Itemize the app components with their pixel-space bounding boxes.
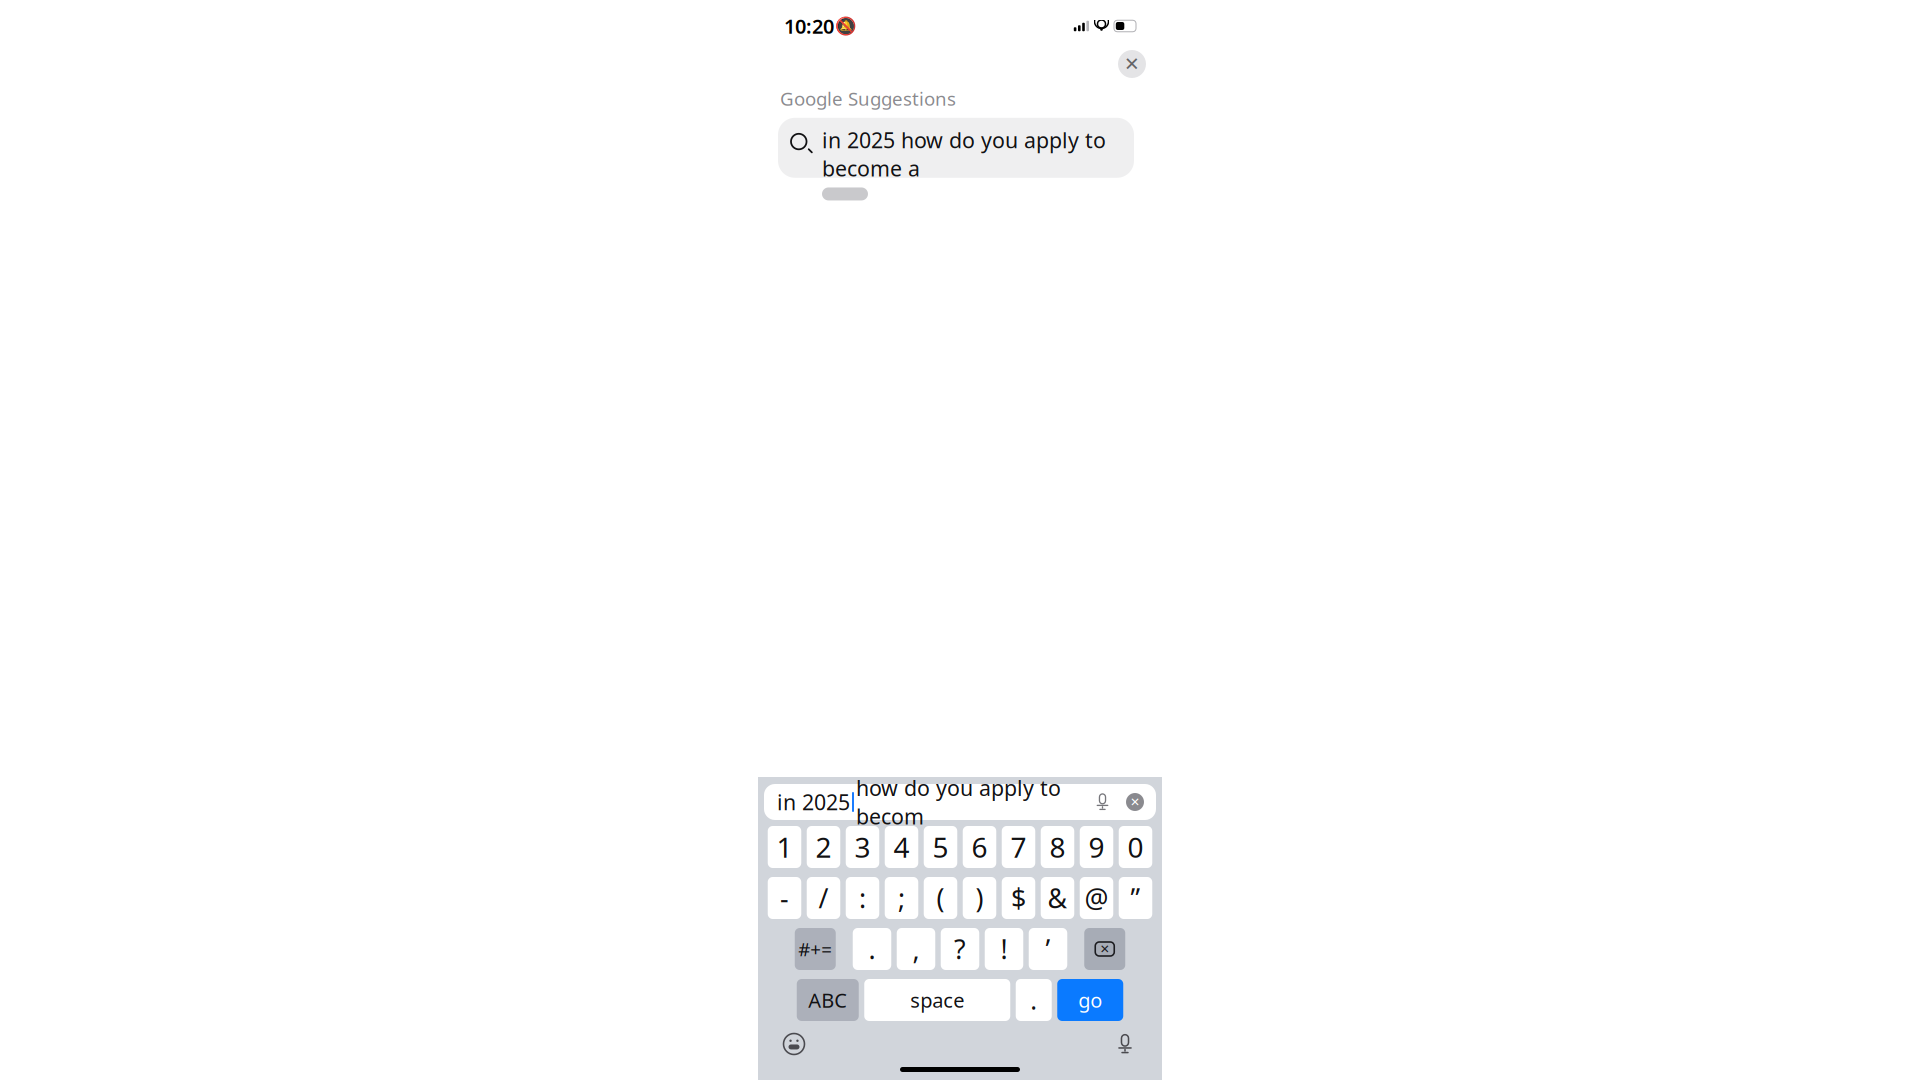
staticText: . [868, 931, 875, 967]
staticText: how do you apply to becom [856, 774, 1061, 830]
button[interactable]: 7 [1002, 826, 1035, 868]
staticText: 2 [815, 828, 831, 866]
button[interactable]: 2 [807, 826, 840, 868]
staticText: ; [898, 880, 905, 916]
button[interactable]: 1 [768, 826, 801, 868]
staticText: 9 [1088, 828, 1104, 866]
button[interactable]: . [853, 928, 891, 970]
staticText: 4 [893, 828, 909, 866]
staticText: in 2025 how do you apply to become a [822, 126, 1106, 182]
button[interactable]: - [768, 877, 801, 919]
button[interactable]: 6 [963, 826, 996, 868]
staticText: , [912, 931, 919, 967]
staticText: in 2025 [777, 788, 850, 816]
button[interactable]: Clear text [1126, 793, 1144, 811]
staticText: . [1030, 983, 1037, 1017]
staticText: 6 [971, 828, 987, 866]
staticText: / [818, 880, 828, 916]
staticText: & [1047, 880, 1067, 916]
button[interactable]: : [846, 877, 879, 919]
button[interactable]: space [864, 979, 1010, 1021]
staticText: #+= [798, 937, 832, 961]
staticText: 3 [854, 828, 870, 866]
staticText: ? [954, 931, 966, 967]
button[interactable]: ” [1119, 877, 1152, 919]
button[interactable]: & [1041, 877, 1074, 919]
staticText: ” [1130, 880, 1140, 916]
staticText: 1 [776, 828, 792, 866]
button[interactable]: 8 [1041, 826, 1074, 868]
staticText: ’ [1045, 931, 1050, 967]
staticText: 8 [1049, 828, 1065, 866]
button[interactable]: 9 [1080, 826, 1113, 868]
staticText: ) [975, 880, 983, 916]
button[interactable]: ; [885, 877, 918, 919]
button[interactable]: @ [1080, 877, 1113, 919]
staticText: ✕ [1100, 942, 1110, 956]
staticText: 5 [932, 828, 948, 866]
button[interactable]: 0 [1119, 826, 1152, 868]
button[interactable]: 3 [846, 826, 879, 868]
button[interactable]: . [1016, 979, 1052, 1021]
button[interactable]: in 2025 how do you apply to become a [778, 118, 1134, 178]
staticText: ABC [808, 987, 847, 1013]
button[interactable]: ? [941, 928, 979, 970]
staticText: Google Suggestions [780, 86, 956, 111]
button[interactable]: Delete [1084, 928, 1125, 970]
button[interactable]: ABC [797, 979, 859, 1021]
staticText: go [1078, 987, 1102, 1013]
staticText: ! [1000, 931, 1007, 967]
button[interactable]: 5 [924, 826, 957, 868]
button[interactable]: / [807, 877, 840, 919]
button[interactable]: 4 [885, 826, 918, 868]
button[interactable]: ( [924, 877, 957, 919]
staticText: 10:20 [784, 13, 834, 39]
staticText: 🔕 [834, 16, 856, 36]
staticText: space [910, 987, 964, 1013]
button[interactable]: ’ [1029, 928, 1067, 970]
staticText: 7 [1010, 828, 1026, 866]
button[interactable]: Emoji [782, 1032, 806, 1056]
staticText: : [859, 880, 866, 916]
button[interactable]: , [897, 928, 935, 970]
staticText: @ [1084, 880, 1108, 916]
staticText: 0 [1127, 828, 1143, 866]
button[interactable]: $ [1002, 877, 1035, 919]
staticText: $ [1011, 880, 1026, 916]
button[interactable]: Dictate [1093, 792, 1112, 811]
staticText: ✕ [1124, 53, 1140, 75]
button[interactable]: ) [963, 877, 996, 919]
button[interactable]: Close [1118, 50, 1146, 78]
button[interactable]: #+= [795, 928, 836, 970]
staticText: ✕ [1130, 795, 1140, 809]
staticText: - [780, 880, 789, 916]
button[interactable]: Dictation [1114, 1033, 1136, 1055]
staticText: ( [936, 880, 944, 916]
button[interactable]: go [1057, 979, 1123, 1021]
button[interactable]: ! [985, 928, 1023, 970]
